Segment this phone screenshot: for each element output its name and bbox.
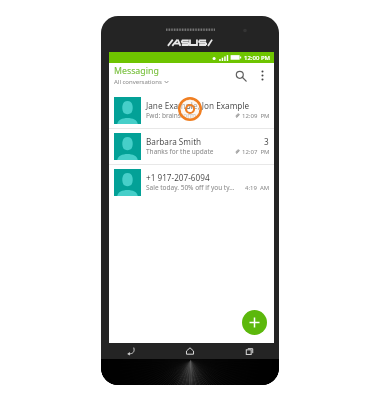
staticText: Thanks for the update [146, 147, 235, 156]
staticText: All conversations [114, 78, 162, 86]
staticText: 12:00 PM [244, 54, 271, 62]
staticText: Fwd: brainstorm [146, 111, 235, 120]
button[interactable]: +1 917-207-6094 [109, 165, 274, 200]
button[interactable]: Jane Example, Jon Example [109, 93, 274, 128]
staticText: 12:09 PM [242, 112, 270, 120]
staticText: 12:07 PM [242, 148, 270, 156]
staticText: 4:19 AM [245, 184, 270, 192]
staticText: +1 917-207-6094 [146, 172, 270, 183]
button[interactable]: Search [231, 65, 251, 86]
staticText: Sale today. 50% off if you ty... [146, 183, 245, 192]
button[interactable]: New message [242, 310, 267, 335]
staticText: 3 [264, 136, 269, 147]
button[interactable]: Recent apps [241, 343, 257, 359]
button[interactable]: Home [182, 343, 198, 359]
button[interactable]: Back [123, 343, 139, 359]
staticText: Messaging [114, 65, 159, 77]
staticText: Jane Example, Jon Example [146, 100, 270, 111]
button[interactable]: Barbara Smith [109, 129, 274, 164]
button[interactable]: More options [254, 65, 271, 86]
staticText: Barbara Smith [146, 136, 264, 147]
